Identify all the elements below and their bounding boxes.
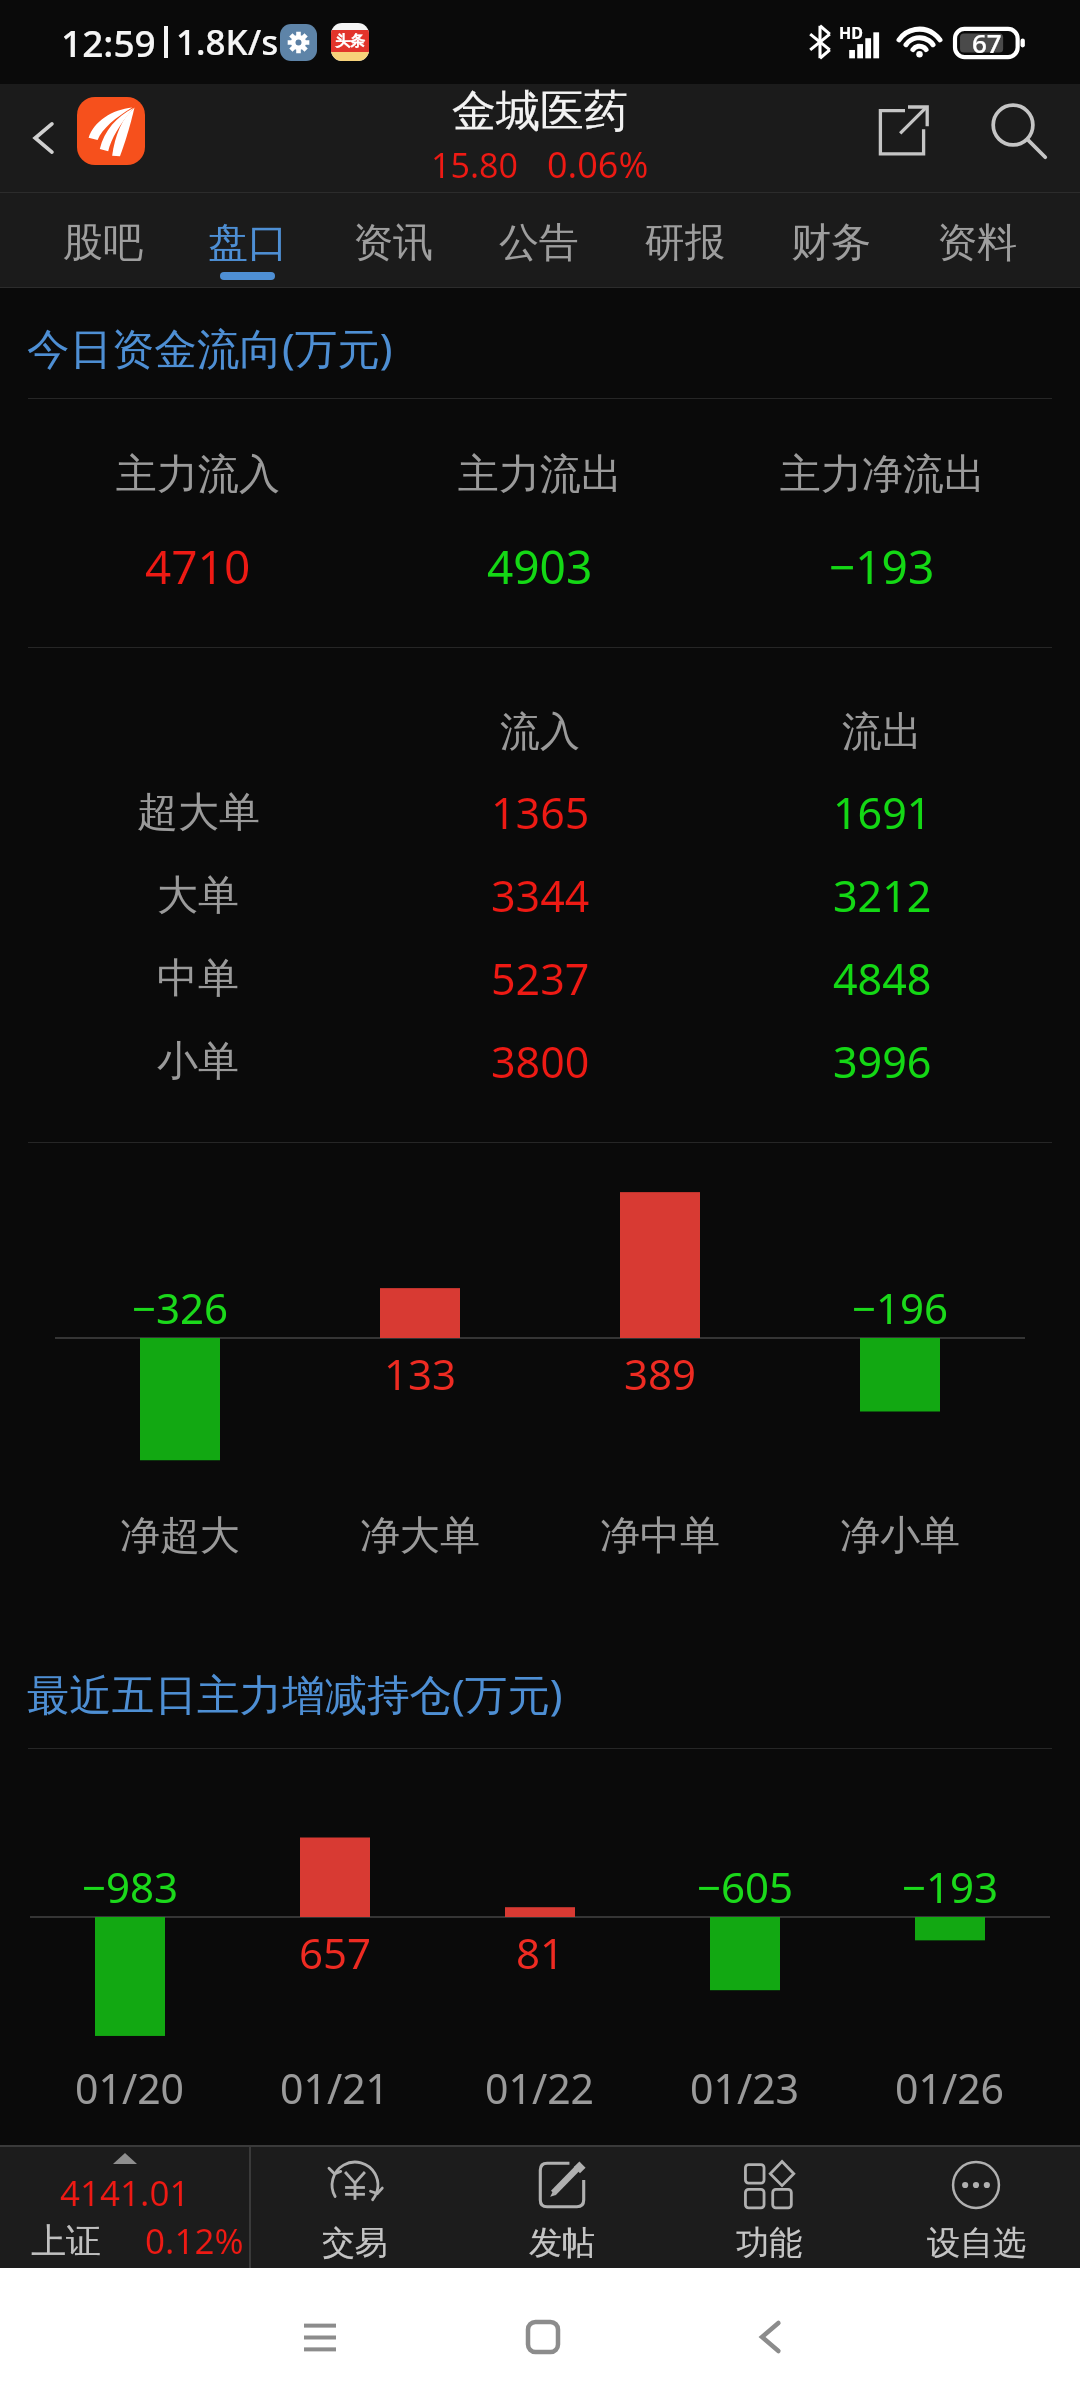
button[interactable]: 公告: [466, 192, 612, 288]
staticText: −326: [132, 1279, 229, 1336]
staticText: 公告: [499, 217, 579, 267]
staticText: 股吧: [63, 217, 143, 267]
staticText: 主力流出: [458, 449, 622, 501]
staticText: 净中单: [600, 1510, 720, 1560]
staticText: 功能: [736, 2222, 802, 2264]
staticText: 上证: [31, 2219, 101, 2263]
staticText: 流出: [842, 706, 922, 756]
staticText: −196: [852, 1279, 949, 1336]
staticText: 0.06%: [547, 140, 649, 189]
staticText: 0.12%: [145, 2217, 244, 2265]
staticText: 净超大: [120, 1510, 240, 1560]
staticText: 4710: [145, 535, 251, 598]
staticText: 67: [972, 25, 1002, 60]
staticText: 今日资金流向(万元): [27, 319, 393, 377]
staticText: 657: [299, 1924, 372, 1981]
staticText: 流入: [500, 706, 580, 756]
staticText: 4848: [833, 949, 932, 1008]
button[interactable]: 研报: [612, 192, 758, 288]
button[interactable]: Home: [498, 2268, 588, 2400]
staticText: 超大单: [137, 787, 260, 839]
staticText: 4903: [487, 535, 593, 598]
staticText: 头条: [335, 32, 365, 51]
staticText: 01/26: [895, 2060, 1005, 2116]
staticText: 3996: [833, 1032, 932, 1091]
button[interactable]: Share: [848, 84, 956, 192]
staticText: 3800: [491, 1032, 590, 1091]
button[interactable]: Search: [964, 84, 1072, 192]
staticText: 发帖: [529, 2222, 595, 2264]
staticText: 12:59: [61, 17, 156, 67]
button[interactable]: 股吧: [30, 192, 175, 288]
staticText: 交易: [322, 2222, 388, 2264]
staticText: 研报: [645, 217, 725, 267]
staticText: 大单: [157, 870, 239, 922]
staticText: −605: [697, 1858, 794, 1915]
button[interactable]: 财务: [758, 192, 904, 288]
button[interactable]: Back: [725, 2268, 815, 2400]
button[interactable]: 发帖: [458, 2145, 665, 2268]
staticText: 资料: [937, 217, 1017, 267]
staticText: 金城医药: [452, 84, 628, 136]
button[interactable]: 资料: [904, 192, 1050, 288]
button[interactable]: 设自选: [872, 2145, 1080, 2268]
staticText: 1.8K/s: [176, 18, 279, 66]
staticText: 01/22: [485, 2060, 595, 2116]
staticText: 财务: [791, 217, 871, 267]
staticText: 4141.01: [60, 2169, 190, 2217]
staticText: 3212: [833, 866, 932, 925]
staticText: 资讯: [353, 217, 433, 267]
button[interactable]: 交易: [251, 2145, 458, 2268]
staticText: 5237: [491, 949, 590, 1008]
staticText: −193: [902, 1858, 999, 1915]
staticText: 389: [624, 1345, 697, 1402]
staticText: 81: [516, 1924, 565, 1981]
staticText: 主力净流出: [780, 449, 985, 501]
staticText: 主力流入: [116, 449, 280, 501]
staticText: 1691: [833, 783, 932, 842]
staticText: 01/23: [690, 2060, 800, 2116]
staticText: 最近五日主力增减持仓(万元): [27, 1665, 563, 1723]
staticText: 中单: [157, 953, 239, 1005]
staticText: −193: [829, 535, 935, 598]
button[interactable]: Shanghai Composite index: [0, 2145, 249, 2268]
staticText: HD: [839, 22, 863, 44]
staticText: 01/21: [280, 2060, 390, 2116]
staticText: 净大单: [360, 1510, 480, 1560]
staticText: 1365: [491, 783, 590, 842]
staticText: 设自选: [927, 2222, 1026, 2264]
staticText: 15.80: [431, 142, 518, 188]
staticText: −983: [82, 1858, 179, 1915]
staticText: 小单: [157, 1036, 239, 1088]
button[interactable]: Back: [4, 84, 84, 192]
staticText: 盘口: [208, 217, 288, 267]
button[interactable]: Recents: [275, 2268, 365, 2400]
staticText: 01/20: [75, 2060, 185, 2116]
staticText: 净小单: [840, 1510, 960, 1560]
staticText: 133: [384, 1345, 457, 1402]
button[interactable]: 功能: [665, 2145, 872, 2268]
staticText: 3344: [491, 866, 590, 925]
button[interactable]: App logo: [77, 97, 145, 165]
button[interactable]: 资讯: [320, 192, 466, 288]
button[interactable]: 盘口: [175, 192, 320, 288]
